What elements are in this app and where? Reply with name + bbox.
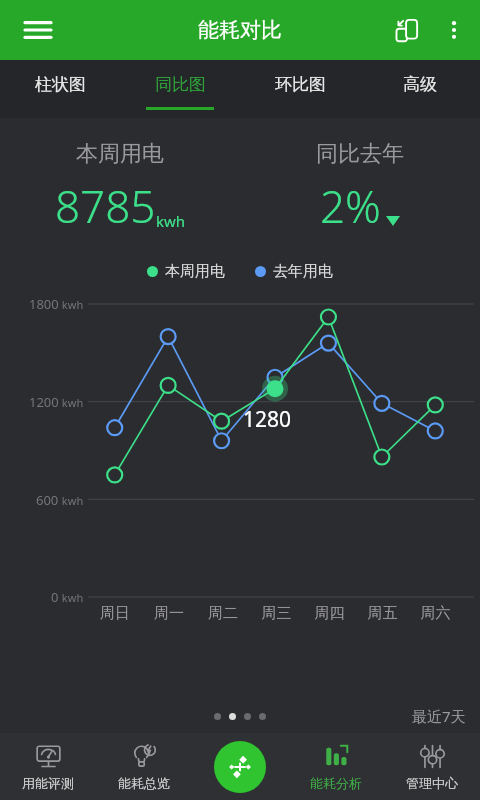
button[interactable]: 用能评测 (0, 733, 96, 800)
button[interactable]: 最近7天 (412, 706, 466, 726)
button[interactable]: 高级 (360, 60, 480, 118)
button[interactable]: Menu (14, 6, 62, 54)
staticText: kwh (59, 493, 84, 508)
staticText: 高级 (403, 74, 437, 95)
staticText: 周六 (409, 604, 462, 623)
button[interactable]: 同比图 (120, 60, 240, 118)
staticText: 1280 (243, 405, 292, 434)
staticText: 本周用电 (165, 262, 225, 281)
button[interactable]: 能耗总览 (96, 733, 192, 800)
button[interactable]: 能耗分析 (288, 733, 384, 800)
staticText: 1200 (29, 393, 59, 411)
staticText: 周日 (88, 604, 142, 623)
staticText: 能耗分析 (310, 775, 362, 791)
staticText: 1800 (29, 295, 59, 313)
staticText: 周五 (356, 604, 409, 623)
staticText: 能耗对比 (198, 17, 282, 43)
staticText: 能耗总览 (118, 775, 170, 791)
button[interactable]: 管理中心 (384, 733, 480, 800)
button[interactable]: Energy network (214, 741, 266, 793)
staticText: 周四 (303, 604, 356, 623)
staticText: 环比图 (275, 74, 326, 95)
staticText: 2% (320, 176, 381, 236)
staticText: 管理中心 (406, 775, 458, 791)
button[interactable]: 环比图 (240, 60, 360, 118)
button[interactable]: Rotate screen (384, 6, 432, 54)
staticText: 同比去年 (316, 140, 404, 168)
staticText: kwh (59, 297, 84, 312)
staticText: 去年用电 (273, 262, 333, 281)
staticText: 周一 (142, 604, 196, 623)
staticText: 周三 (250, 604, 303, 623)
staticText: kwh (156, 211, 186, 231)
staticText: 本周用电 (76, 140, 164, 168)
staticText: kwh (59, 590, 84, 605)
staticText: 8785 (55, 176, 156, 236)
staticText: 周二 (196, 604, 250, 623)
staticText: 柱状图 (35, 74, 86, 95)
button[interactable]: More options (432, 8, 476, 52)
staticText: 同比图 (155, 74, 206, 95)
staticText: 600 (36, 491, 59, 509)
button[interactable]: 柱状图 (0, 60, 120, 118)
staticText: kwh (59, 395, 84, 410)
staticText: 用能评测 (22, 775, 74, 791)
staticText: 0 (51, 588, 59, 606)
